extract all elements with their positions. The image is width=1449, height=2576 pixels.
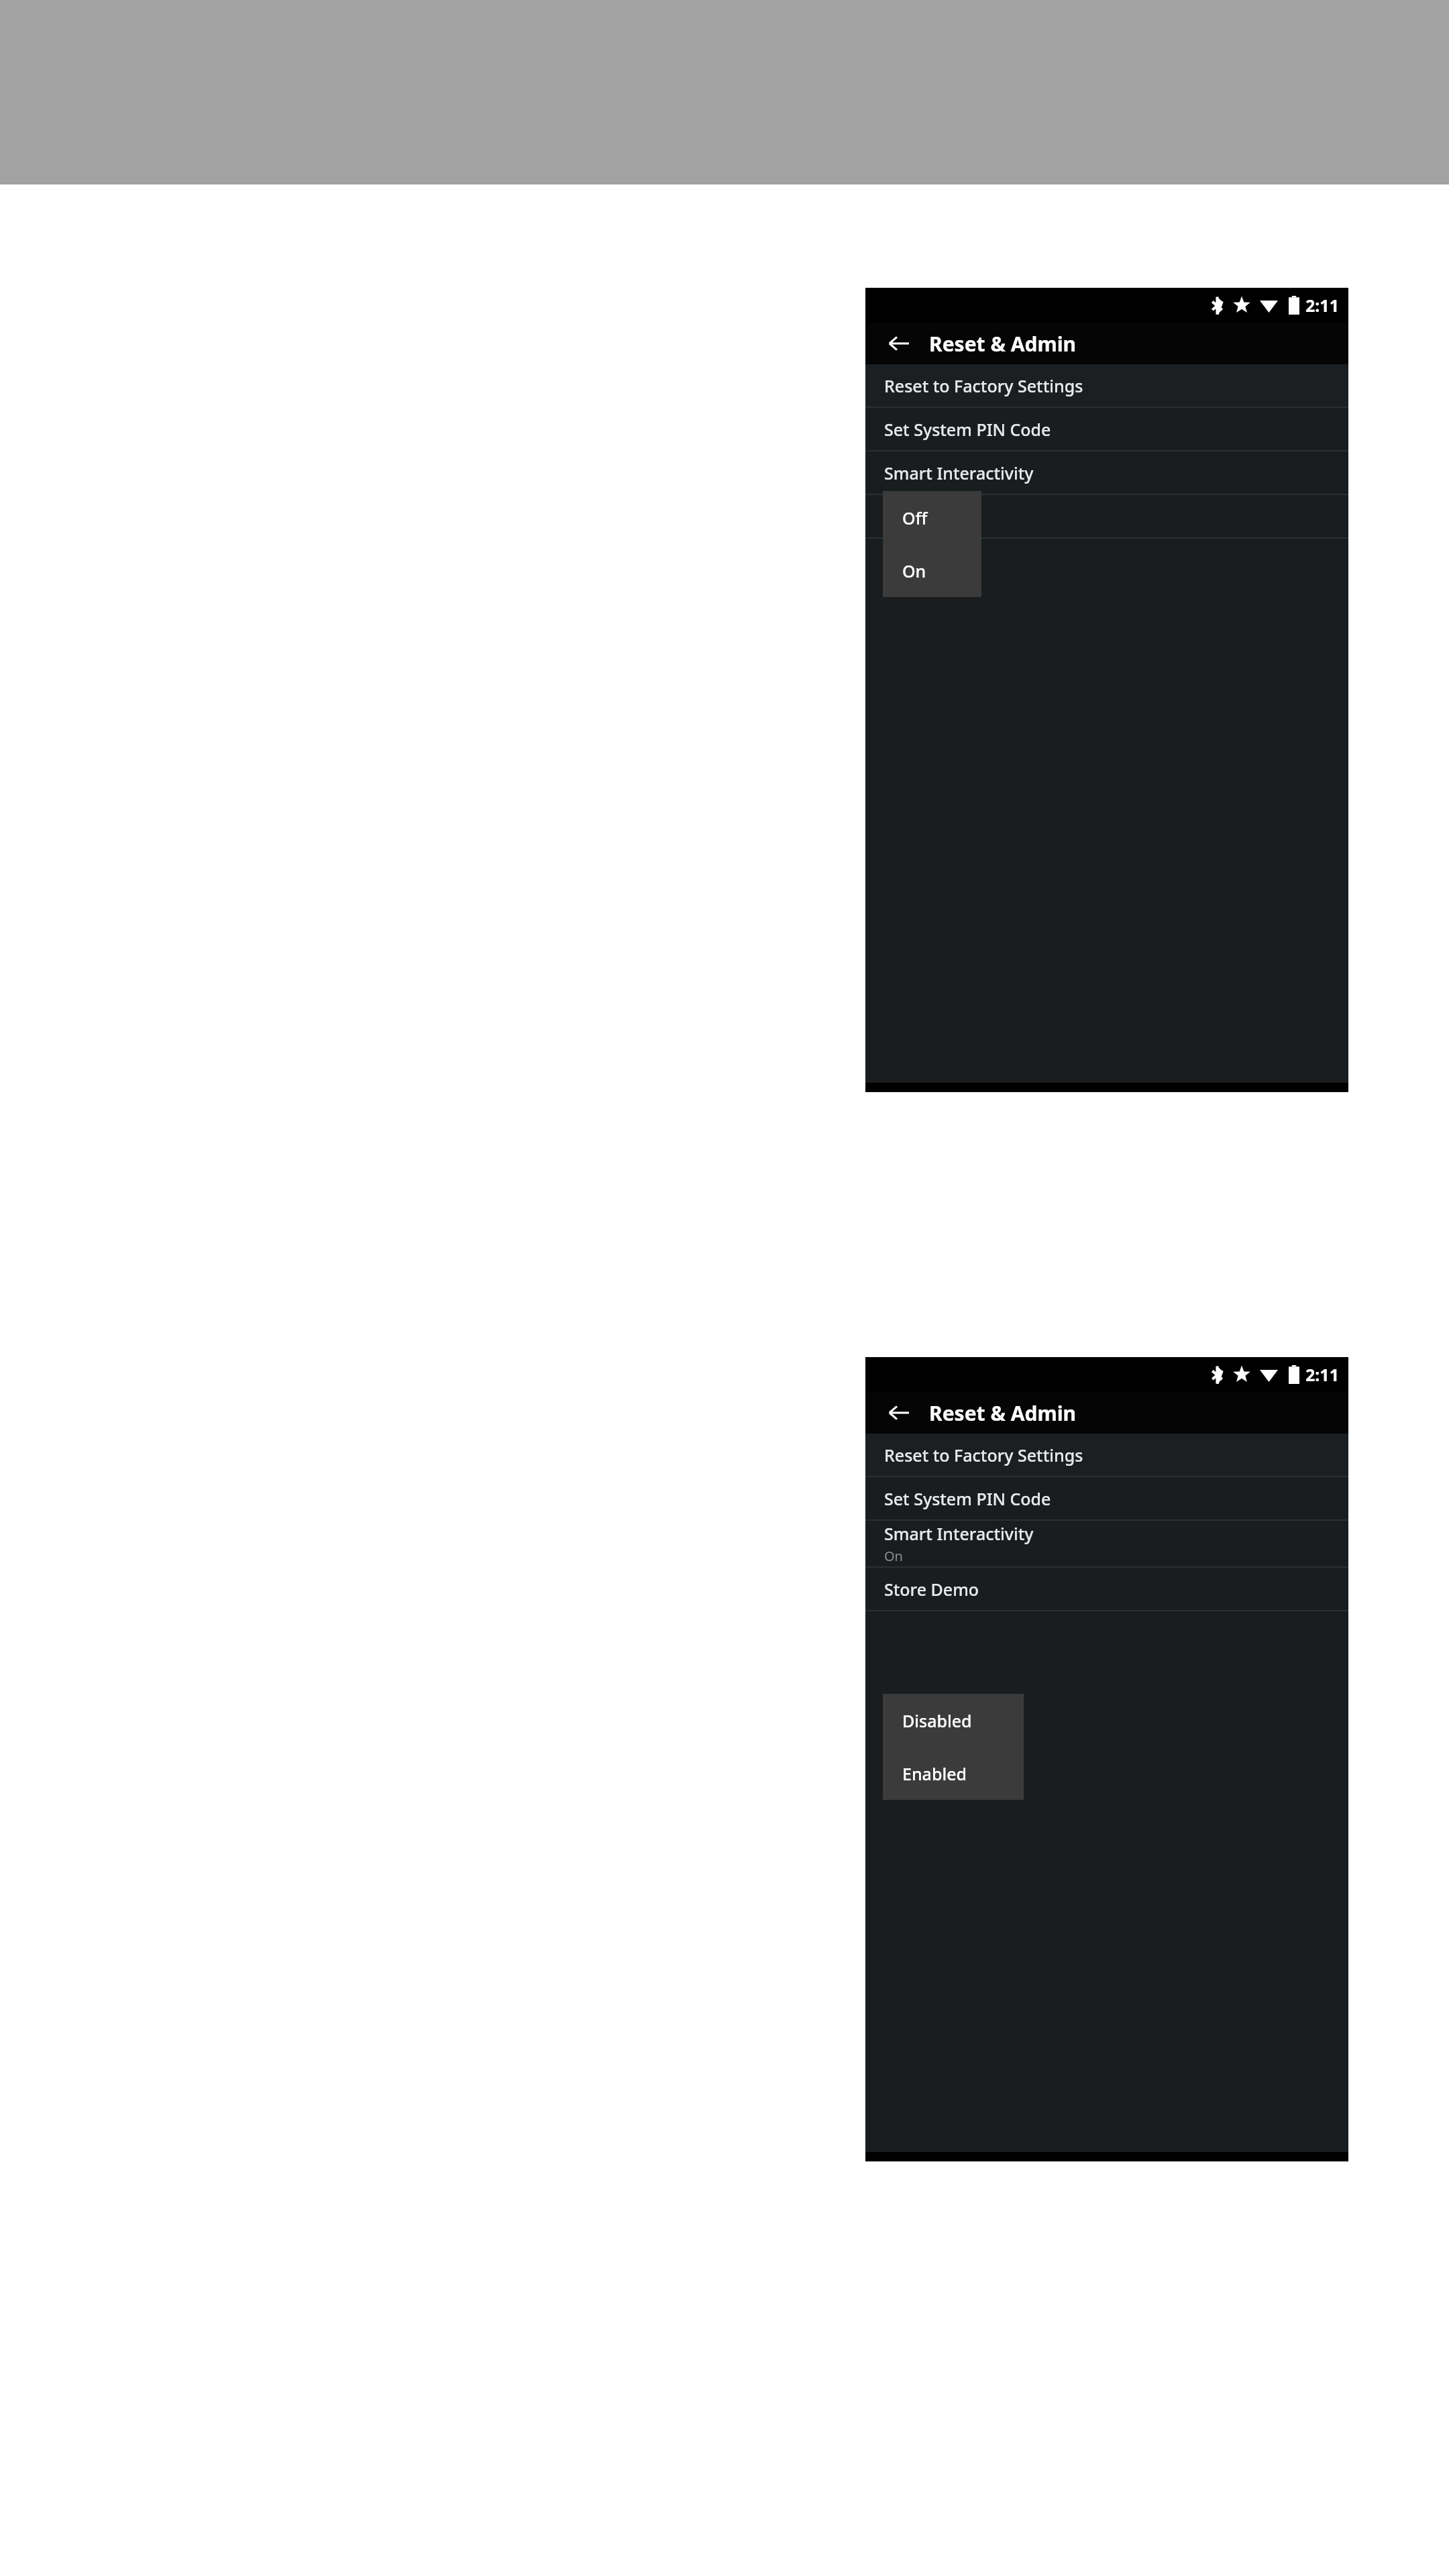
staticText: Smart Interactivity: [884, 462, 1034, 484]
staticText: Reset to Factory Settings: [884, 1444, 1083, 1466]
button[interactable]: Reset to Factory Settings: [865, 364, 1348, 407]
button[interactable]: [865, 495, 1348, 537]
button[interactable]: Back: [885, 330, 912, 357]
button[interactable]: Store Demo: [865, 1568, 1348, 1610]
button[interactable]: Enabled: [883, 1747, 1024, 1800]
staticText: Disabled: [902, 1709, 972, 1732]
staticText: Set System PIN Code: [884, 418, 1051, 441]
button[interactable]: Reset to Factory Settings: [865, 1434, 1348, 1476]
button[interactable]: Disabled: [883, 1694, 1024, 1747]
button[interactable]: Set System PIN Code: [865, 408, 1348, 450]
button[interactable]: Set System PIN Code: [865, 1477, 1348, 1519]
staticText: Reset to Factory Settings: [884, 374, 1083, 397]
staticText: Off: [902, 506, 928, 529]
button[interactable]: Back: [885, 1399, 912, 1426]
staticText: Set System PIN Code: [884, 1487, 1051, 1510]
button[interactable]: Smart Interactivity: [865, 451, 1348, 494]
staticText: On: [884, 1547, 903, 1565]
staticText: 2:11: [1305, 1363, 1339, 1386]
button[interactable]: Off: [883, 491, 981, 544]
button[interactable]: Smart Interactivity: [865, 1521, 1348, 1566]
staticText: Reset & Admin: [929, 330, 1077, 358]
staticText: Smart Interactivity: [884, 1522, 1034, 1545]
staticText: Reset & Admin: [929, 1399, 1077, 1427]
staticText: Enabled: [902, 1762, 967, 1785]
button[interactable]: On: [883, 544, 981, 597]
staticText: 2:11: [1305, 294, 1339, 317]
staticText: On: [902, 559, 926, 582]
staticText: Store Demo: [884, 1578, 979, 1601]
